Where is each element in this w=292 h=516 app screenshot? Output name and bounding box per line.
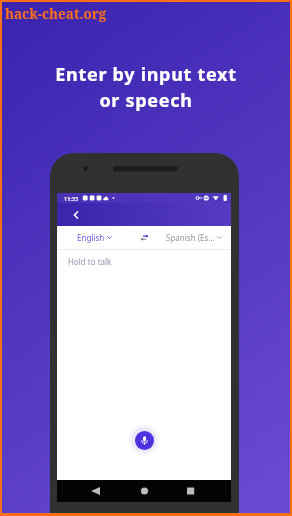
button[interactable]: Spanish (Es…: [157, 232, 231, 243]
staticText: Spanish (Es…: [166, 232, 215, 243]
staticText: or speech: [99, 88, 193, 113]
button[interactable]: Swap languages: [131, 233, 157, 242]
staticText: hack-cheat.org: [5, 5, 107, 23]
staticText: English: [77, 232, 105, 243]
button[interactable]: Hold to talk microphone: [135, 431, 154, 450]
staticText: 11:33: [64, 195, 79, 202]
button[interactable]: Back: [68, 207, 84, 223]
staticText: Enter by input text: [55, 62, 237, 87]
staticText: Hold to talk: [68, 256, 112, 267]
button[interactable]: English: [57, 232, 131, 243]
